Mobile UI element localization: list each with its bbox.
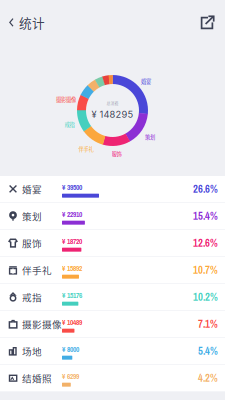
staticText: 26.6% — [193, 182, 218, 196]
staticText: ¥ 8000 — [62, 344, 79, 354]
staticText: ¥ 15176 — [62, 290, 82, 300]
staticText: 戒指 — [22, 290, 42, 304]
staticText: 婚宴 — [141, 78, 151, 85]
staticText: ¥ 15892 — [62, 263, 82, 273]
staticText: 服饰 — [111, 150, 121, 158]
staticText: 5.4% — [198, 344, 218, 358]
staticText: 婚宴 — [22, 182, 42, 196]
button[interactable]: 场地 — [0, 338, 225, 365]
staticText: 场地 — [22, 344, 42, 358]
staticText: ¥ 148295 — [91, 109, 133, 120]
staticText: ¥ 39500 — [62, 182, 82, 192]
staticText: 10.2% — [193, 290, 218, 304]
button[interactable]: 统计 — [0, 4, 45, 41]
button[interactable]: 戒指 — [0, 284, 225, 311]
button[interactable]: 服饰 — [0, 230, 225, 257]
staticText: 结婚照 — [22, 371, 52, 385]
staticText: ¥ 18720 — [62, 236, 82, 246]
staticText: 策划 — [145, 133, 155, 141]
staticText: 总消费 — [106, 101, 118, 107]
staticText: 摄影摄像 — [22, 317, 62, 331]
staticText: 服饰 — [22, 236, 42, 250]
staticText: 伴手礼 — [22, 263, 52, 277]
staticText: 策划 — [22, 209, 42, 223]
button[interactable]: 婚宴 — [0, 176, 225, 203]
staticText: 伴手礼 — [78, 145, 93, 153]
staticText: 7.1% — [198, 317, 218, 331]
staticText: 戒指 — [64, 121, 74, 128]
button[interactable]: 结婚照 — [0, 365, 225, 392]
staticText: 10.7% — [193, 263, 218, 277]
staticText: 统计 — [19, 13, 45, 32]
staticText: ¥ 6299 — [62, 371, 79, 381]
staticText: 4.2% — [198, 371, 218, 385]
button[interactable]: 摄影摄像 — [0, 311, 225, 338]
staticText: 15.4% — [193, 209, 218, 223]
staticText: 12.6% — [193, 236, 218, 250]
staticText: 摄影摄像 — [56, 96, 76, 103]
button[interactable]: 伴手礼 — [0, 257, 225, 284]
button[interactable]: 策划 — [0, 203, 225, 230]
staticText: ¥ 22910 — [62, 209, 82, 219]
button[interactable]: 分享 — [199, 5, 225, 40]
staticText: ¥ 10489 — [62, 317, 82, 327]
